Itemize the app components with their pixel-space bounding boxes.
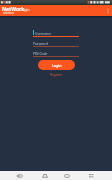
button[interactable]: Password — [33, 39, 79, 47]
button[interactable]: Username — [33, 29, 79, 37]
staticText: PIN Code — [33, 51, 48, 55]
button[interactable]: Login — [38, 60, 75, 70]
staticText: Password — [33, 41, 48, 45]
staticText: Register — [50, 73, 63, 77]
button[interactable]: Register — [49, 72, 64, 78]
button[interactable]: More options — [103, 5, 112, 16]
staticText: Login — [21, 8, 30, 12]
staticText: Login — [52, 63, 62, 68]
staticText: Username — [35, 31, 52, 35]
staticText: solutions — [3, 11, 14, 14]
button[interactable]: Recent apps — [62, 171, 72, 180]
button[interactable]: Back — [15, 171, 25, 180]
button[interactable]: Home — [40, 171, 50, 180]
button[interactable]: Keyboard — [86, 171, 96, 180]
button[interactable]: PIN Code — [33, 49, 79, 57]
staticText: NetWork — [2, 6, 25, 13]
